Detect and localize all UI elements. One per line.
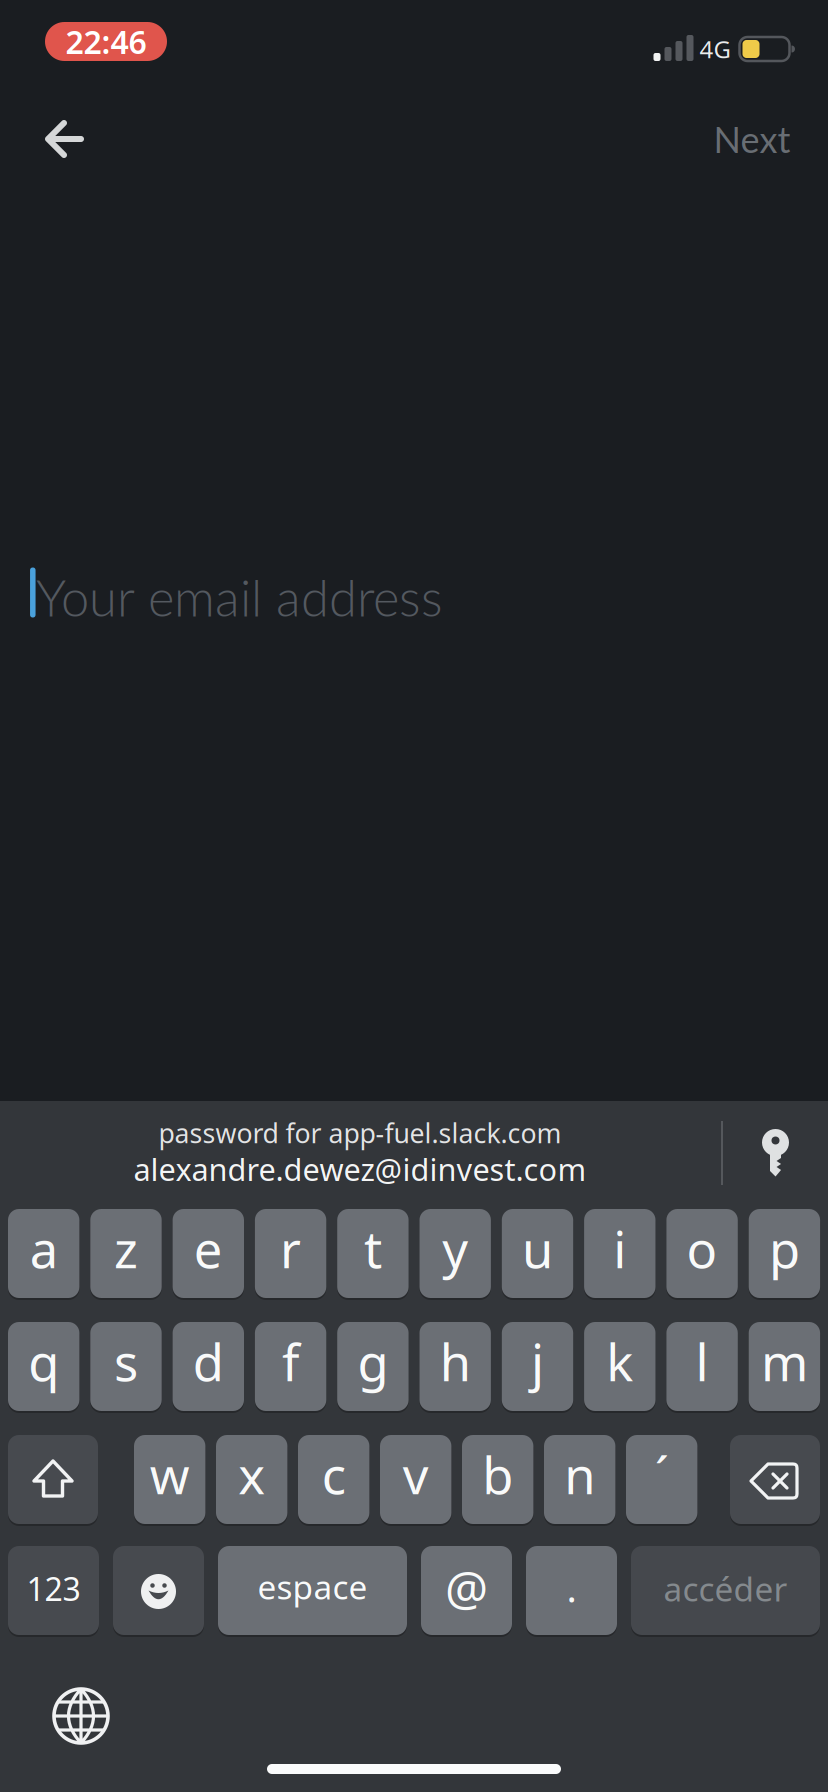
staticText: n (564, 1441, 595, 1508)
button[interactable]: q (8, 1322, 79, 1411)
staticText: m (761, 1328, 808, 1395)
button[interactable]: y (419, 1209, 491, 1298)
button[interactable]: z (90, 1209, 162, 1298)
button[interactable]: Change keyboard (49, 1684, 113, 1748)
staticText: k (606, 1328, 633, 1395)
staticText: x (238, 1441, 265, 1508)
staticText: v (403, 1441, 429, 1508)
button[interactable]: v (380, 1435, 451, 1524)
staticText: 4G (699, 33, 730, 65)
button[interactable]: Numbers (8, 1546, 99, 1635)
button[interactable]: u (502, 1209, 573, 1298)
button[interactable]: d (173, 1322, 244, 1411)
staticText: e (194, 1215, 223, 1282)
staticText: h (440, 1328, 471, 1395)
staticText: f (282, 1328, 299, 1395)
button[interactable]: c (298, 1435, 369, 1524)
staticText: ´ (655, 1441, 669, 1508)
staticText: 123 (26, 1567, 80, 1610)
staticText: i (613, 1215, 626, 1282)
staticText: a (30, 1215, 58, 1282)
button[interactable]: espace (218, 1546, 407, 1635)
staticText: . (566, 1562, 576, 1613)
staticText: s (114, 1328, 138, 1395)
button[interactable]: r (255, 1209, 326, 1298)
button[interactable]: t (337, 1209, 409, 1298)
button[interactable]: b (462, 1435, 533, 1524)
staticText: w (150, 1441, 190, 1508)
staticText: r (280, 1215, 301, 1282)
button[interactable]: ´ (626, 1435, 697, 1524)
button[interactable]: Back (43, 117, 87, 161)
button[interactable]: m (749, 1322, 820, 1411)
button[interactable]: @ (421, 1546, 512, 1635)
staticText: Your email address (36, 567, 443, 627)
staticText: password for app-fuel.slack.com (158, 1115, 561, 1151)
staticText: accéder (663, 1566, 787, 1611)
staticText: @ (445, 1556, 488, 1619)
button[interactable]: g (337, 1322, 409, 1411)
button[interactable]: s (90, 1322, 162, 1411)
staticText: z (114, 1215, 138, 1282)
button[interactable]: accéder (631, 1546, 820, 1635)
staticText: l (696, 1328, 709, 1395)
staticText: p (769, 1215, 800, 1282)
staticText: b (482, 1441, 513, 1508)
staticText: o (687, 1215, 718, 1282)
button[interactable]: Passwords (757, 1120, 801, 1190)
button[interactable]: password for app-fuel.slack.com (133, 1116, 586, 1188)
button[interactable]: f (255, 1322, 326, 1411)
staticText: t (364, 1215, 382, 1282)
button[interactable]: n (544, 1435, 615, 1524)
button[interactable]: i (584, 1209, 655, 1298)
button[interactable]: w (134, 1435, 205, 1524)
button[interactable]: l (666, 1322, 738, 1411)
staticText: j (531, 1328, 544, 1395)
button[interactable]: o (666, 1209, 738, 1298)
staticText: u (522, 1215, 553, 1282)
staticText: g (357, 1328, 388, 1395)
button[interactable]: Next (713, 117, 790, 161)
button[interactable]: x (216, 1435, 287, 1524)
staticText: Next (713, 117, 790, 161)
staticText: c (322, 1441, 346, 1508)
button[interactable]: . (526, 1546, 617, 1635)
button[interactable]: a (8, 1209, 79, 1298)
button[interactable]: j (502, 1322, 573, 1411)
button[interactable]: p (749, 1209, 820, 1298)
staticText: 22:46 (65, 20, 146, 63)
button[interactable]: Shift (8, 1435, 98, 1524)
button[interactable]: e (173, 1209, 244, 1298)
staticText: d (193, 1328, 224, 1395)
staticText: espace (257, 1564, 367, 1609)
staticText: y (442, 1215, 468, 1282)
button[interactable]: Emoji (113, 1546, 204, 1635)
button[interactable]: 22:46 (45, 22, 167, 61)
staticText: q (28, 1328, 59, 1395)
staticText: alexandre.dewez@idinvest.com (133, 1149, 586, 1189)
button[interactable]: Delete (730, 1435, 820, 1524)
button[interactable]: h (419, 1322, 491, 1411)
button[interactable]: k (584, 1322, 655, 1411)
